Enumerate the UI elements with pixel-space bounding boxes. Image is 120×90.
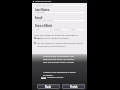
staticText: Last Name	[35, 8, 50, 12]
button[interactable]: My self agree to receive information abo…	[34, 42, 85, 48]
button[interactable]: Finish	[62, 84, 85, 89]
staticText: Back	[45, 85, 52, 88]
button[interactable]: reCAPTCHA	[41, 76, 64, 79]
staticText: Health Enrollment	[35, 0, 52, 3]
staticText: Optional	[36, 11, 45, 14]
button[interactable]: Year	[69, 28, 85, 31]
button[interactable]: Health Enrollment	[32, 0, 87, 3]
staticText: Enter Your Email	[36, 19, 53, 22]
staticText: Date of Birth	[35, 24, 53, 28]
staticText: Month	[54, 28, 61, 31]
staticText: Who do I want to enroll in the plan of b…	[34, 33, 85, 39]
button[interactable]: Enter first name	[34, 4, 85, 7]
button[interactable]: Enter Your Email	[34, 19, 85, 22]
staticText: Please read, understand and agree to the…	[43, 55, 77, 64]
staticText: My self agree to receive information abo…	[37, 42, 85, 48]
staticText: Year	[71, 28, 76, 31]
staticText: Superior Nursing	[47, 76, 64, 79]
button[interactable]: Day	[34, 28, 51, 31]
button[interactable]: Back	[37, 84, 60, 89]
staticText: Email	[35, 16, 43, 20]
staticText: Enter first name	[36, 4, 53, 7]
staticText: reCAPTCHA	[41, 77, 46, 79]
staticText: Finish	[70, 85, 78, 88]
button[interactable]: Optional	[34, 11, 85, 14]
button[interactable]: Month	[52, 28, 68, 31]
button[interactable]: My self and I agree to receive	[34, 37, 85, 40]
staticText: My self and I agree to receive	[37, 37, 69, 40]
staticText: I agree to the Disclosure & Terms of Ser…	[43, 71, 78, 77]
staticText: Day	[36, 28, 40, 31]
